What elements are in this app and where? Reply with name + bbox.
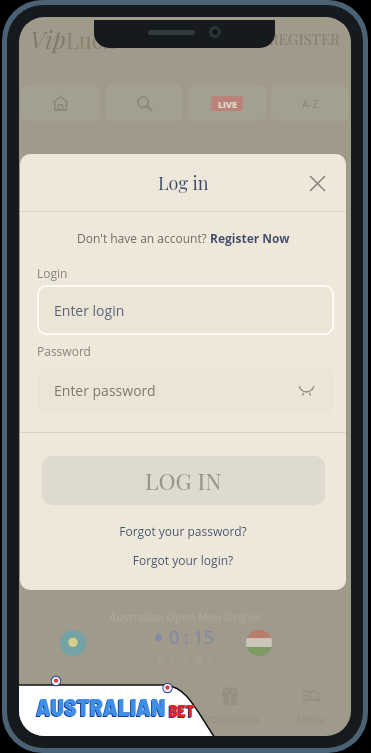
button[interactable]: Home xyxy=(21,85,100,121)
staticText: Enter login xyxy=(54,301,125,320)
staticText: Vip xyxy=(30,23,66,55)
button[interactable]: LOG IN xyxy=(42,456,325,505)
staticText: Australian Open Men Singles xyxy=(109,609,262,624)
button[interactable]: Enter login xyxy=(37,285,334,335)
button[interactable]: Show password xyxy=(295,379,317,401)
staticText: 0 : 15 xyxy=(169,625,215,650)
button[interactable]: Forgot your password? xyxy=(20,523,346,539)
staticText: LIVE xyxy=(218,98,237,110)
staticText: A-Z xyxy=(302,96,319,111)
staticText: Password xyxy=(37,343,91,359)
staticText: Register Now xyxy=(210,230,290,246)
staticText: Luck xyxy=(66,25,115,54)
button[interactable]: LIVE xyxy=(188,85,266,121)
button[interactable]: Search xyxy=(105,85,183,121)
button[interactable]: Enter password xyxy=(37,367,334,413)
button[interactable]: Forgot your login? xyxy=(20,552,346,568)
staticText: Promotions xyxy=(200,711,260,726)
staticText: AUSTRALIAN xyxy=(35,693,165,722)
staticText: Enter password xyxy=(54,381,156,400)
button[interactable]: Don't have an account? xyxy=(20,230,346,246)
other: Search xyxy=(136,95,153,112)
staticText: AUSTRALIAN xyxy=(36,692,166,721)
staticText: BET xyxy=(168,702,194,721)
staticText: BET xyxy=(169,701,195,720)
staticText: Don't have an account? xyxy=(77,230,210,246)
staticText: REGISTER xyxy=(269,29,340,49)
other: Home xyxy=(52,95,69,112)
button[interactable]: Close xyxy=(302,168,332,198)
staticText: LOG IN xyxy=(145,465,222,496)
button[interactable]: Promotions xyxy=(189,678,270,736)
staticText: Log in xyxy=(158,171,209,195)
staticText: Menu xyxy=(296,711,326,726)
staticText: Login xyxy=(37,265,68,281)
button[interactable]: Menu xyxy=(270,678,351,736)
